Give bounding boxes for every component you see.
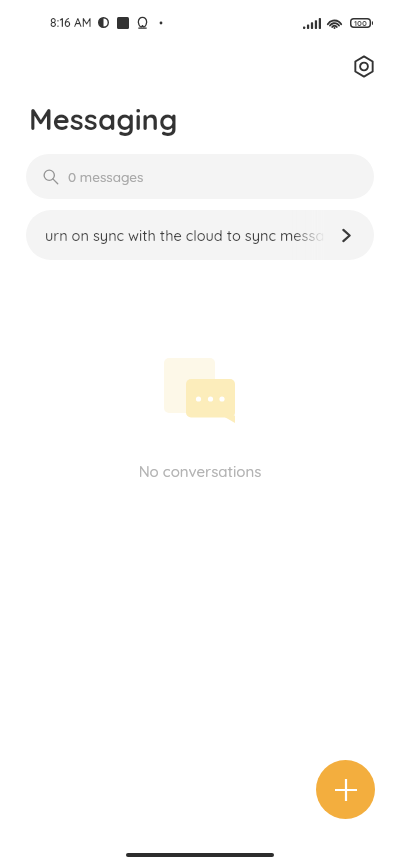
staticText: 100 xyxy=(354,18,367,28)
staticText: urn on sync with the cloud to sync messa… xyxy=(45,226,327,244)
staticText: 8:16 AM xyxy=(50,15,92,30)
button[interactable]: New conversation xyxy=(316,760,375,819)
button[interactable]: Settings xyxy=(350,52,378,80)
button[interactable]: urn on sync with the cloud to sync messa… xyxy=(26,210,374,260)
staticText: 0 messages xyxy=(68,168,144,185)
staticText: Messaging xyxy=(29,101,178,137)
button[interactable]: 0 messages xyxy=(26,154,374,199)
staticText: No conversations xyxy=(0,462,400,481)
